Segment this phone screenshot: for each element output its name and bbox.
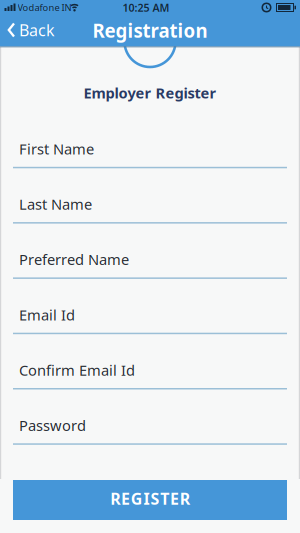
button[interactable]: REGISTER — [13, 480, 287, 520]
staticText: Preferred Name — [19, 250, 129, 269]
staticText: Employer Register — [83, 83, 216, 103]
staticText: Confirm Email Id — [19, 360, 135, 380]
staticText: Vodafone IN — [17, 1, 71, 14]
staticText: 10:25 AM — [122, 0, 169, 15]
staticText: Last Name — [19, 194, 92, 214]
staticText: REGISTER — [110, 488, 190, 509]
button[interactable]: Password — [0, 417, 300, 445]
button[interactable]: Preferred Name — [0, 251, 300, 279]
staticText: Email Id — [19, 305, 75, 324]
button[interactable]: Email Id — [0, 307, 300, 334]
button[interactable]: Confirm Email Id — [0, 362, 300, 389]
button[interactable]: First Name — [0, 141, 300, 168]
staticText: Password — [19, 416, 86, 435]
staticText: Back — [19, 19, 55, 41]
staticText: Registration — [92, 18, 207, 43]
staticText: First Name — [19, 139, 94, 159]
button[interactable]: Last Name — [0, 196, 300, 224]
button[interactable]: Back — [8, 16, 55, 44]
